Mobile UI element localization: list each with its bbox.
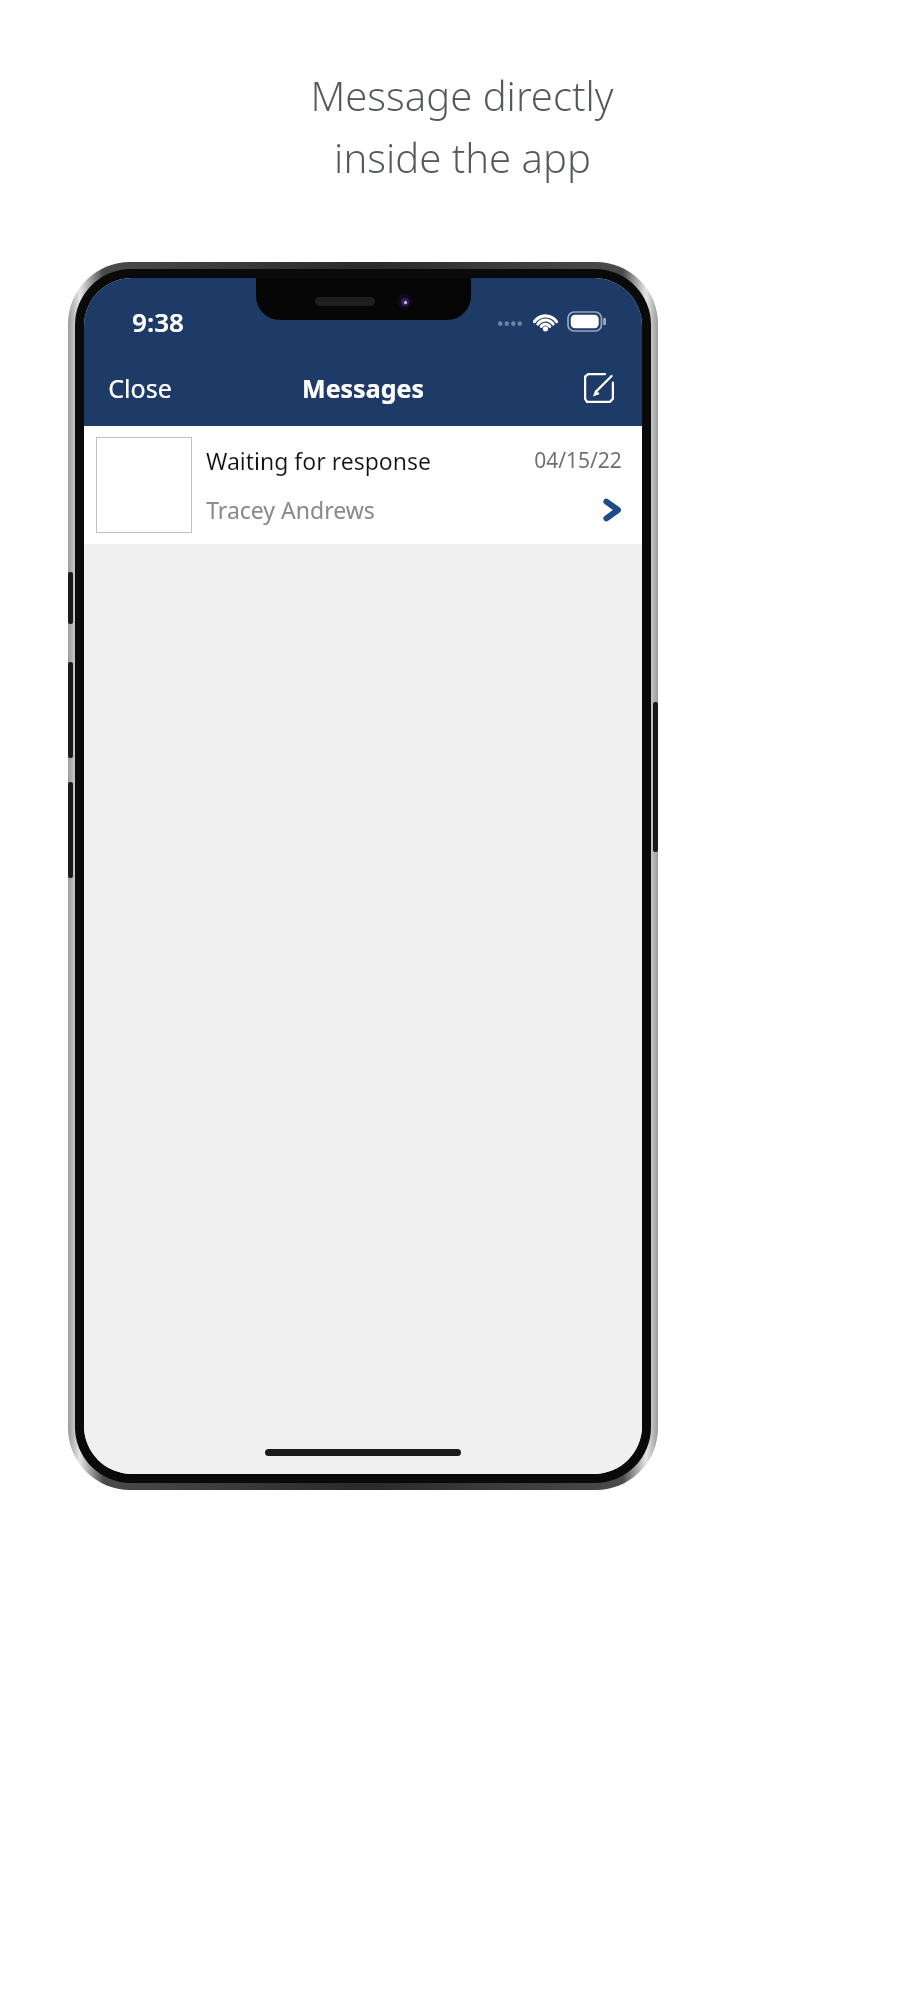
staticText: Messages bbox=[302, 371, 424, 405]
staticText: Tracey Andrews bbox=[206, 494, 375, 525]
staticText: Waiting for response bbox=[206, 445, 431, 476]
staticText: Message directly bbox=[310, 68, 614, 122]
button[interactable]: Waiting for response bbox=[84, 426, 642, 544]
button[interactable]: Close bbox=[94, 363, 186, 413]
staticText: 04/15/22 bbox=[534, 446, 622, 475]
button[interactable]: Compose new message bbox=[576, 365, 622, 411]
staticText: 9:38 bbox=[132, 304, 184, 339]
staticText: inside the app bbox=[334, 130, 591, 184]
staticText: Close bbox=[108, 371, 172, 405]
